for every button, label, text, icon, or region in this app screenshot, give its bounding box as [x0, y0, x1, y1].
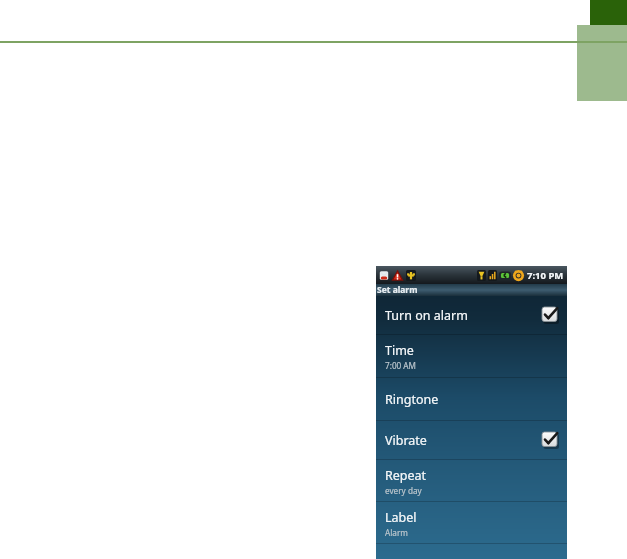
button[interactable]: Ringtone [376, 378, 567, 421]
other: Signal [488, 270, 497, 281]
staticText: Label [385, 509, 417, 526]
staticText: Vibrate [385, 432, 427, 449]
staticText: Alarm [385, 527, 408, 538]
staticText: Set alarm [377, 284, 418, 296]
other: USB connected [406, 270, 416, 281]
staticText: every day [385, 485, 422, 496]
other: Warning [392, 270, 403, 281]
staticText: 7:00 AM [385, 360, 417, 371]
staticText: Ringtone [385, 391, 439, 408]
other: Battery charging [499, 270, 511, 281]
staticText: Turn on alarm [385, 307, 468, 324]
button[interactable]: Vibrate [376, 421, 567, 460]
button[interactable]: Turn on alarm [376, 296, 567, 335]
button[interactable]: Label [376, 502, 567, 544]
staticText: Repeat [385, 467, 427, 484]
staticText: 7:10 PM [527, 269, 564, 282]
button[interactable]: Repeat [376, 460, 567, 502]
other: Missed call [379, 270, 389, 281]
other: Alarm set [513, 269, 524, 281]
button[interactable]: Time [376, 335, 567, 378]
other: Checked [542, 432, 559, 449]
staticText: Time [385, 342, 414, 359]
other: Wi-Fi [477, 270, 486, 281]
other: Checked [542, 307, 559, 324]
